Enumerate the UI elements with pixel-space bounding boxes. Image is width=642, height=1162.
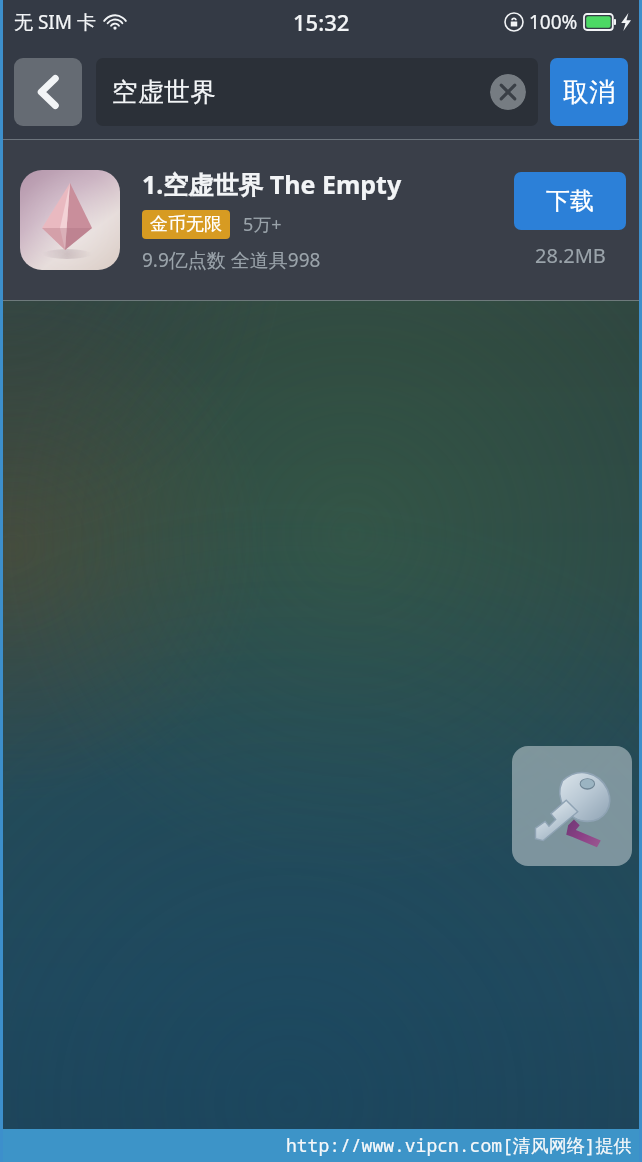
staticText: 15:32 — [293, 7, 350, 37]
button[interactable]: 取消 — [550, 58, 628, 126]
staticText: 空虚世界 — [112, 76, 216, 109]
staticText: 下载 — [546, 186, 594, 216]
staticText: 5万+ — [243, 212, 282, 237]
button[interactable]: Clear text — [490, 74, 526, 110]
button[interactable]: Back — [14, 58, 82, 126]
button[interactable]: 下载 — [514, 172, 626, 230]
button[interactable]: Game tools — [512, 746, 632, 866]
button[interactable]: 空虚世界 — [96, 58, 538, 126]
button[interactable]: 1.空虚世界 The Empty — [0, 140, 642, 300]
staticText: http://www.vipcn.com[清风网络]提供 — [286, 1133, 632, 1158]
staticText: 9.9亿点数 全道具998 — [142, 247, 321, 273]
staticText: 1.空虚世界 The Empty — [142, 167, 402, 201]
staticText: 100% — [529, 9, 578, 35]
staticText: 无 SIM 卡 — [14, 9, 96, 35]
staticText: 取消 — [563, 76, 615, 109]
staticText: 金币无限 — [150, 213, 222, 236]
staticText: 28.2MB — [535, 242, 606, 269]
